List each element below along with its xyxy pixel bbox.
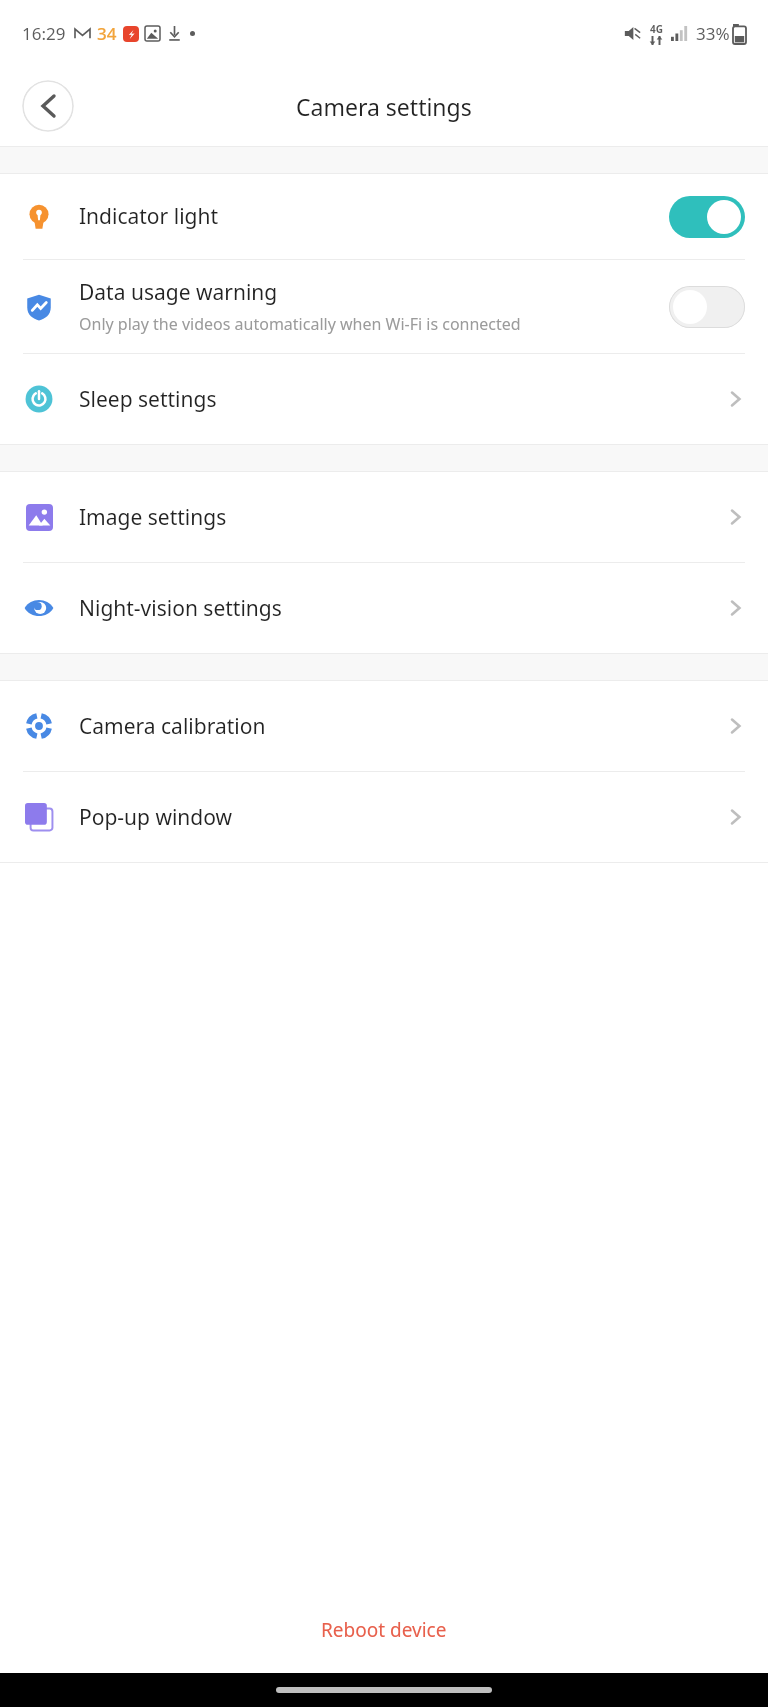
button[interactable]: Indicator light xyxy=(0,174,768,259)
staticText: Reboot device xyxy=(321,1617,447,1643)
staticText: Camera calibration xyxy=(79,712,725,741)
button[interactable]: Night-vision settings xyxy=(0,563,768,653)
button[interactable]: Back xyxy=(22,80,74,132)
button[interactable]: Reboot device xyxy=(0,1599,768,1673)
staticText: Pop-up window xyxy=(79,803,725,832)
staticText: Image settings xyxy=(79,503,725,532)
button[interactable]: Toggle off xyxy=(669,286,745,328)
staticText: 16:29 xyxy=(22,22,66,45)
staticText: 33% xyxy=(696,22,730,45)
button[interactable]: Toggle on xyxy=(669,196,745,238)
button[interactable]: Camera calibration xyxy=(0,681,768,771)
staticText: Night-vision settings xyxy=(79,594,725,623)
button[interactable]: Sleep settings xyxy=(0,354,768,444)
staticText: Data usage warning xyxy=(79,278,278,307)
staticText: Indicator light xyxy=(79,202,669,231)
button[interactable]: Data usage warning xyxy=(0,260,768,353)
button[interactable]: Image settings xyxy=(0,472,768,562)
staticText: Sleep settings xyxy=(79,385,725,414)
staticText: 4G xyxy=(650,22,663,36)
staticText: Only play the videos automatically when … xyxy=(79,313,521,335)
staticText: Camera settings xyxy=(296,91,472,122)
button[interactable]: Pop-up window xyxy=(0,772,768,862)
staticText: 34 xyxy=(97,22,117,45)
